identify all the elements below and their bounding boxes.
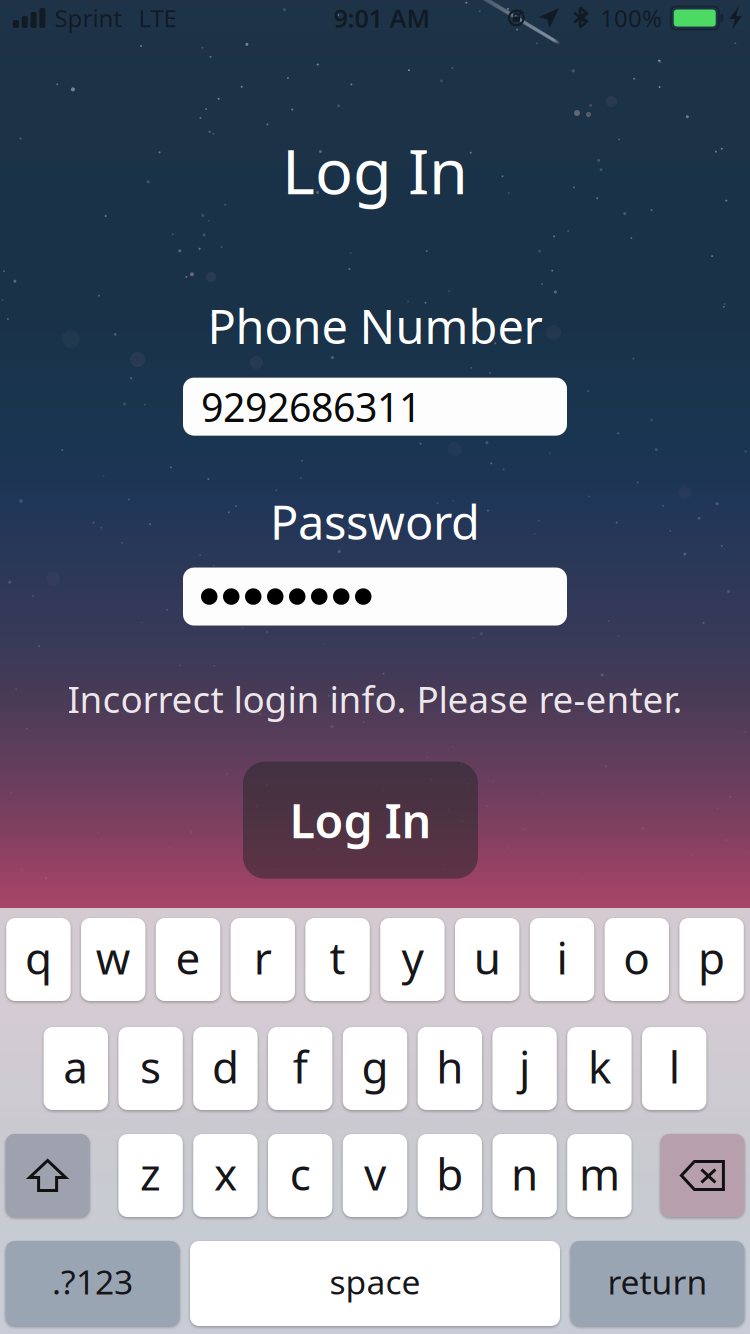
button[interactable]: d <box>193 1027 258 1110</box>
button[interactable]: r <box>231 918 295 1001</box>
button[interactable]: b <box>418 1134 482 1217</box>
staticText: .?123 <box>52 1259 133 1304</box>
staticText: w <box>96 927 131 987</box>
staticText: y <box>401 927 423 987</box>
staticText: Log In <box>289 788 431 852</box>
button[interactable]: f <box>268 1027 332 1110</box>
staticText: s <box>140 1036 161 1096</box>
button[interactable]: Log In <box>243 762 478 879</box>
staticText: e <box>175 927 200 987</box>
button[interactable]: v <box>343 1134 407 1217</box>
button[interactable]: return <box>570 1241 744 1326</box>
staticText: m <box>579 1143 620 1203</box>
staticText: i <box>556 927 567 987</box>
staticText: l <box>669 1036 680 1096</box>
staticText: j <box>519 1036 530 1096</box>
staticText: Sprint <box>54 2 122 34</box>
button[interactable]: u <box>455 918 519 1001</box>
staticText: Phone Number <box>207 294 542 358</box>
staticText: g <box>361 1036 388 1096</box>
button[interactable]: z <box>118 1134 183 1217</box>
staticText: d <box>212 1036 239 1096</box>
button[interactable]: x <box>193 1134 258 1217</box>
button[interactable]: Delete <box>660 1134 744 1217</box>
staticText: p <box>698 927 725 987</box>
staticText: Incorrect login info. Please re-enter. <box>67 674 682 724</box>
button[interactable]: w <box>81 918 145 1001</box>
staticText: Password <box>270 490 480 553</box>
button[interactable]: t <box>305 918 370 1001</box>
staticText: a <box>63 1036 88 1096</box>
button[interactable]: q <box>6 918 71 1001</box>
button[interactable]: s <box>118 1027 183 1110</box>
staticText: r <box>254 927 272 987</box>
button[interactable]: m <box>567 1134 632 1217</box>
staticText: f <box>293 1036 308 1096</box>
button[interactable]: .?123 <box>6 1241 180 1326</box>
button[interactable]: g <box>343 1027 407 1110</box>
button[interactable]: j <box>492 1027 557 1110</box>
staticText: v <box>364 1143 386 1203</box>
button[interactable]: space <box>190 1241 560 1326</box>
button[interactable]: y <box>380 918 445 1001</box>
staticText: u <box>474 927 501 987</box>
staticText: Log In <box>282 127 468 213</box>
staticText: o <box>623 927 650 987</box>
staticText: return <box>607 1259 707 1304</box>
button[interactable]: h <box>418 1027 482 1110</box>
button[interactable]: c <box>268 1134 332 1217</box>
staticText: t <box>330 927 346 987</box>
staticText: k <box>588 1036 611 1096</box>
button[interactable]: a <box>44 1027 108 1110</box>
button[interactable]: e <box>156 918 220 1001</box>
staticText: LTE <box>138 2 176 34</box>
button[interactable]: k <box>567 1027 632 1110</box>
staticText: q <box>25 927 52 987</box>
staticText: space <box>329 1259 420 1304</box>
button[interactable]: i <box>530 918 594 1001</box>
staticText: 9292686311 <box>201 380 421 433</box>
staticText: 9:01 AM <box>333 1 430 35</box>
staticText: x <box>214 1143 237 1203</box>
button[interactable]: l <box>642 1027 706 1110</box>
staticText: b <box>436 1143 463 1203</box>
button[interactable]: Shift <box>6 1134 90 1217</box>
staticText: c <box>290 1143 311 1203</box>
staticText: n <box>511 1143 538 1203</box>
staticText: z <box>140 1143 161 1203</box>
staticText: 100% <box>600 2 662 34</box>
button[interactable]: p <box>679 918 744 1001</box>
button[interactable]: o <box>605 918 669 1001</box>
staticText: h <box>436 1036 463 1096</box>
button[interactable]: n <box>492 1134 557 1217</box>
